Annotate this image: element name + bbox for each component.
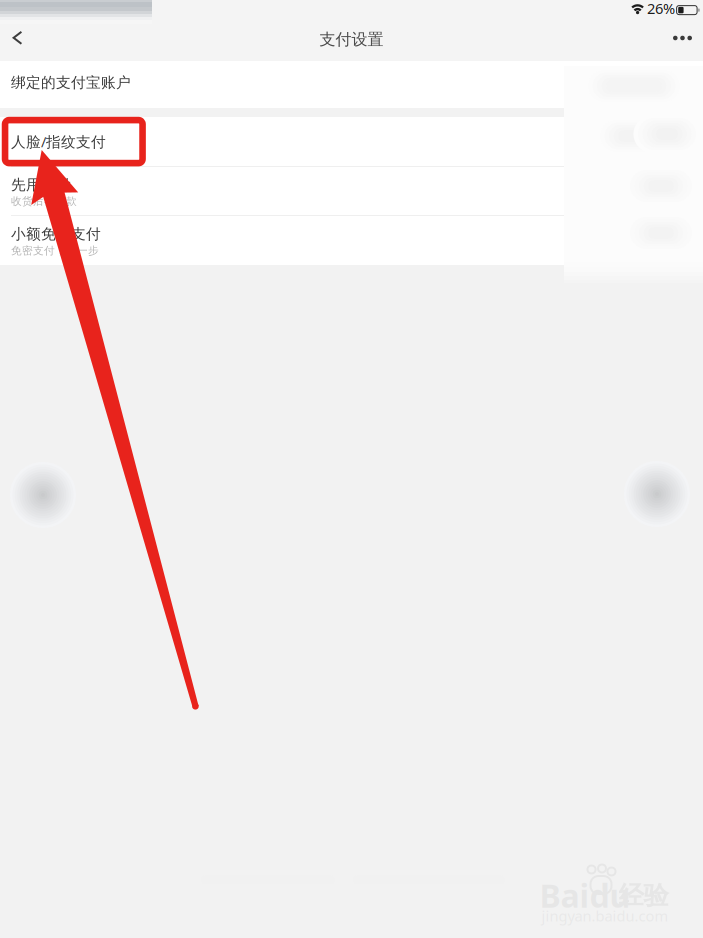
staticText: 收货后再付款 [11,195,77,208]
staticText: 绑定的支付宝账户 [11,73,131,91]
staticText: 人脸/指纹支付 [11,132,106,151]
button[interactable]: Back [0,24,35,61]
button[interactable]: 小额免密支付 [0,216,703,265]
staticText: 先用后付 [11,176,71,194]
button[interactable]: 先用后付 [0,167,703,215]
staticText: Baidu [539,874,630,916]
staticText: 小额免密支付 [11,225,101,243]
staticText: 26% [647,0,675,18]
button[interactable]: 人脸/指纹支付 [0,117,703,166]
staticText: 免密支付，少一步 [11,244,99,257]
staticText: 经验 [618,880,668,911]
button[interactable]: 绑定的支付宝账户 [0,61,703,108]
staticText: 支付设置 [319,29,383,49]
button[interactable]: More options [662,24,703,61]
staticText: jingyan.baidu.com [541,906,668,925]
